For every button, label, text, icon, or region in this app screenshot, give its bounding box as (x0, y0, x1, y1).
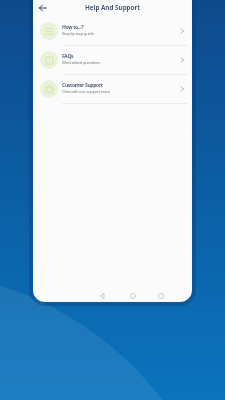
staticText: Most asked questions (62, 59, 100, 65)
staticText: FAQs (62, 53, 74, 60)
button[interactable]: FAQs (33, 46, 192, 74)
button[interactable]: Customer Support (33, 75, 192, 103)
staticText: Step by step guide (62, 30, 94, 36)
button[interactable] (36, 1, 49, 14)
staticText: How to...? (62, 24, 84, 31)
staticText: Help And Support (49, 3, 176, 12)
button[interactable]: How to...? (33, 17, 192, 45)
staticText: Customer Support (62, 82, 103, 89)
staticText: Chat with our support team (62, 88, 111, 94)
